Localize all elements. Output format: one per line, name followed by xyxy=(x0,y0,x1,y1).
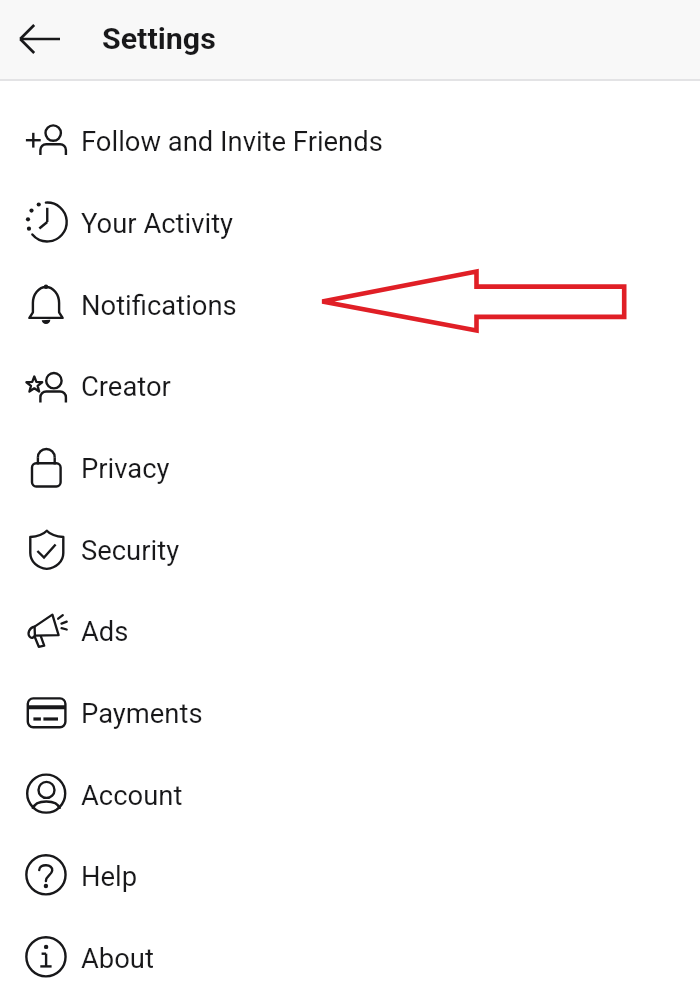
button[interactable]: Payments xyxy=(0,671,700,753)
button[interactable]: Help xyxy=(0,834,700,916)
staticText: Notifications xyxy=(81,290,237,322)
staticText: Privacy xyxy=(81,453,170,485)
button[interactable]: Follow and Invite Friends xyxy=(0,99,700,181)
staticText: Creator xyxy=(81,371,171,403)
button[interactable]: Security xyxy=(0,508,700,590)
button[interactable]: Your Activity xyxy=(0,181,700,263)
staticText: Settings xyxy=(102,21,216,57)
staticText: About xyxy=(81,943,154,975)
button[interactable]: About xyxy=(0,916,700,997)
button[interactable]: Notifications xyxy=(0,263,700,345)
staticText: Security xyxy=(81,535,180,567)
button[interactable]: Creator xyxy=(0,344,700,426)
button[interactable]: Privacy xyxy=(0,426,700,508)
staticText: Help xyxy=(81,861,138,893)
staticText: Payments xyxy=(81,698,203,730)
button[interactable]: Back xyxy=(5,4,73,74)
staticText: Your Activity xyxy=(81,208,234,240)
button[interactable]: Account xyxy=(0,753,700,835)
staticText: Follow and Invite Friends xyxy=(81,126,383,158)
staticText: Account xyxy=(81,780,183,812)
button[interactable]: Ads xyxy=(0,589,700,671)
staticText: Ads xyxy=(81,616,129,648)
